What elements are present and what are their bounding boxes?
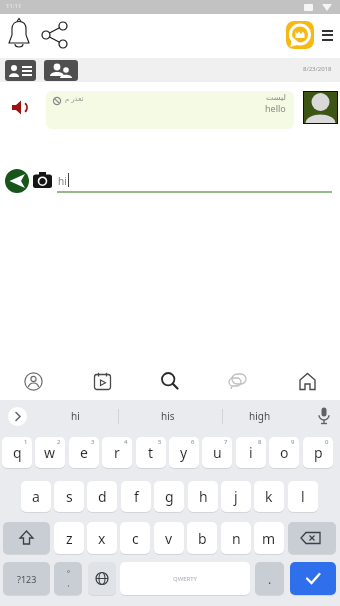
staticText: w xyxy=(44,443,56,462)
button[interactable] xyxy=(322,27,334,43)
staticText: j xyxy=(234,487,238,506)
staticText: p xyxy=(314,443,323,462)
staticText: q xyxy=(13,443,22,462)
staticText: QWERTY xyxy=(173,575,198,583)
button[interactable]: x xyxy=(87,522,117,554)
button[interactable] xyxy=(286,21,314,49)
staticText: 3 xyxy=(91,438,95,446)
button[interactable]: e xyxy=(69,437,99,468)
staticText: 8 xyxy=(258,438,262,446)
button[interactable] xyxy=(8,407,27,426)
button[interactable] xyxy=(288,522,336,554)
staticText: z xyxy=(66,529,73,548)
staticText: 1 xyxy=(24,438,28,446)
staticText: o xyxy=(280,443,289,462)
staticText: i xyxy=(249,443,253,462)
staticText: ?123 xyxy=(17,573,37,585)
staticText: 11:11 xyxy=(6,2,22,10)
staticText: his xyxy=(161,409,175,423)
button[interactable] xyxy=(5,169,29,193)
button[interactable]: q xyxy=(2,437,32,468)
button[interactable]: f xyxy=(121,481,151,512)
button[interactable]: QWERTY xyxy=(120,562,250,595)
staticText: t xyxy=(148,443,154,462)
button[interactable] xyxy=(24,372,43,391)
button[interactable]: k xyxy=(254,481,284,512)
staticText: 4 xyxy=(124,438,128,446)
button[interactable]: a xyxy=(21,481,51,512)
button[interactable]: his xyxy=(133,404,203,428)
button[interactable]: تعذر م xyxy=(46,91,294,129)
button[interactable] xyxy=(5,60,36,81)
staticText: 6 xyxy=(191,438,195,446)
button[interactable]: . xyxy=(255,562,284,595)
button[interactable]: high xyxy=(225,404,295,428)
button[interactable] xyxy=(4,17,34,51)
staticText: hello xyxy=(265,102,286,114)
staticText: hi xyxy=(71,409,80,423)
button[interactable] xyxy=(316,406,332,426)
staticText: . xyxy=(268,571,272,587)
staticText: n xyxy=(232,529,241,548)
button[interactable] xyxy=(33,172,52,188)
button[interactable]: j xyxy=(221,481,251,512)
button[interactable] xyxy=(44,60,78,81)
button[interactable]: c xyxy=(120,522,150,554)
staticText: m xyxy=(262,529,276,548)
staticText: s xyxy=(66,487,73,506)
button[interactable]: p xyxy=(303,437,333,468)
button[interactable] xyxy=(40,20,70,50)
button[interactable] xyxy=(10,98,30,118)
button[interactable]: u xyxy=(202,437,232,468)
staticText: b xyxy=(198,529,207,548)
staticText: ° , xyxy=(67,569,70,589)
staticText: v xyxy=(165,529,173,548)
button[interactable]: r xyxy=(102,437,132,468)
staticText: u xyxy=(213,443,222,462)
staticText: hi xyxy=(58,174,67,188)
staticText: k xyxy=(265,487,273,506)
button[interactable]: g xyxy=(154,481,184,512)
button[interactable] xyxy=(93,372,112,391)
staticText: d xyxy=(98,487,107,506)
staticText: 2 xyxy=(57,438,61,446)
button[interactable]: i xyxy=(236,437,266,468)
button[interactable]: t xyxy=(136,437,166,468)
button[interactable] xyxy=(160,371,180,391)
button[interactable]: n xyxy=(221,522,251,554)
staticText: l xyxy=(301,487,305,506)
staticText: a xyxy=(32,487,40,506)
staticText: 5 xyxy=(158,438,162,446)
staticText: ليست xyxy=(266,93,286,102)
staticText: g xyxy=(165,487,174,506)
button[interactable] xyxy=(228,372,248,390)
staticText: e xyxy=(80,443,88,462)
button[interactable]: v xyxy=(154,522,184,554)
button[interactable]: m xyxy=(254,522,284,554)
button[interactable] xyxy=(3,522,50,554)
button[interactable]: hi xyxy=(40,404,110,428)
button[interactable]: ° , xyxy=(54,562,82,595)
button[interactable]: z xyxy=(54,522,84,554)
staticText: تعذر م xyxy=(65,94,84,104)
button[interactable]: l xyxy=(288,481,318,512)
button[interactable]: s xyxy=(54,481,84,512)
staticText: 9 xyxy=(291,438,295,446)
staticText: 0 xyxy=(325,438,329,446)
button[interactable]: ?123 xyxy=(3,562,50,595)
button[interactable]: y xyxy=(169,437,199,468)
staticText: r xyxy=(114,443,120,462)
button[interactable]: d xyxy=(87,481,117,512)
button[interactable]: h xyxy=(188,481,218,512)
button[interactable]: b xyxy=(187,522,217,554)
button[interactable] xyxy=(88,562,116,595)
button[interactable]: o xyxy=(269,437,299,468)
staticText: y xyxy=(180,443,188,462)
staticText: 7 xyxy=(224,438,228,446)
button[interactable]: w xyxy=(35,437,65,468)
staticText: 8/23/2018 xyxy=(303,65,332,73)
staticText: h xyxy=(199,487,208,506)
staticText: x xyxy=(98,529,106,548)
button[interactable] xyxy=(298,372,315,391)
button[interactable] xyxy=(290,562,336,595)
